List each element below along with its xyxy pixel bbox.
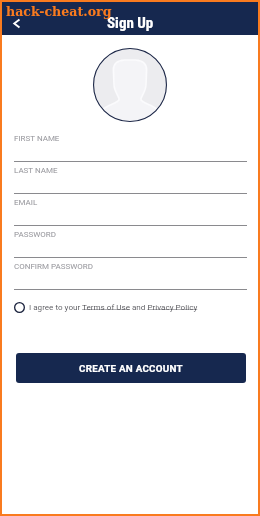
button[interactable]: PASSWORD [14, 227, 247, 259]
button[interactable]: Profile photo [93, 48, 167, 122]
staticText: Sign Up [107, 14, 154, 32]
button[interactable]: Back [5, 11, 29, 35]
button[interactable]: CONFIRM PASSWORD [14, 259, 247, 291]
staticText: EMAIL [14, 198, 38, 207]
staticText: FIRST NAME [14, 134, 60, 143]
staticText: hack-cheat.org [6, 4, 112, 19]
button[interactable]: LAST NAME [14, 163, 247, 195]
staticText: PASSWORD [14, 230, 57, 239]
staticText: I agree to your Terms of Use and Privacy… [29, 302, 198, 311]
staticText: CREATE AN ACCOUNT [79, 363, 183, 374]
staticText: LAST NAME [14, 166, 58, 175]
button[interactable]: I agree to your Terms of Use and Privacy… [14, 298, 198, 317]
button[interactable]: CREATE AN ACCOUNT [16, 353, 246, 383]
button[interactable]: EMAIL [14, 195, 247, 227]
button[interactable]: FIRST NAME [14, 131, 247, 163]
staticText: CONFIRM PASSWORD [14, 262, 93, 271]
